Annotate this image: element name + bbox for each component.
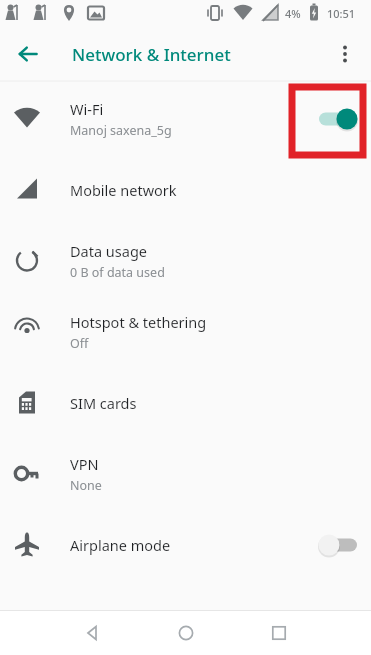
- staticText: Wi-Fi: [70, 99, 104, 119]
- staticText: 10:51: [327, 6, 356, 21]
- button[interactable]: Hotspot & tethering: [0, 296, 371, 367]
- staticText: Network & Internet: [72, 43, 231, 66]
- button[interactable]: Toggle on: [313, 102, 359, 136]
- button[interactable]: Wi-Fi: [0, 83, 371, 154]
- button[interactable]: Airplane mode: [0, 509, 371, 580]
- staticText: Hotspot & tethering: [70, 312, 207, 332]
- button[interactable]: VPN: [0, 438, 371, 509]
- staticText: Mobile network: [70, 180, 177, 200]
- button[interactable]: Home: [166, 613, 206, 653]
- button[interactable]: Back: [72, 613, 112, 653]
- button[interactable]: Recent apps: [259, 613, 299, 653]
- staticText: None: [70, 477, 102, 494]
- staticText: Data usage: [70, 241, 147, 261]
- button[interactable]: More options: [325, 34, 365, 74]
- staticText: SIM cards: [70, 393, 137, 413]
- button[interactable]: Back: [8, 34, 48, 74]
- staticText: 0 B of data used: [70, 264, 165, 281]
- button[interactable]: Data usage: [0, 225, 371, 296]
- button[interactable]: SIM cards: [0, 367, 371, 438]
- staticText: Off: [70, 335, 89, 352]
- button[interactable]: Toggle off: [313, 528, 359, 562]
- staticText: Manoj saxena_5g: [70, 122, 172, 139]
- staticText: Airplane mode: [70, 535, 171, 555]
- button[interactable]: Mobile network: [0, 154, 371, 225]
- staticText: 4%: [285, 6, 301, 21]
- staticText: VPN: [70, 454, 99, 474]
